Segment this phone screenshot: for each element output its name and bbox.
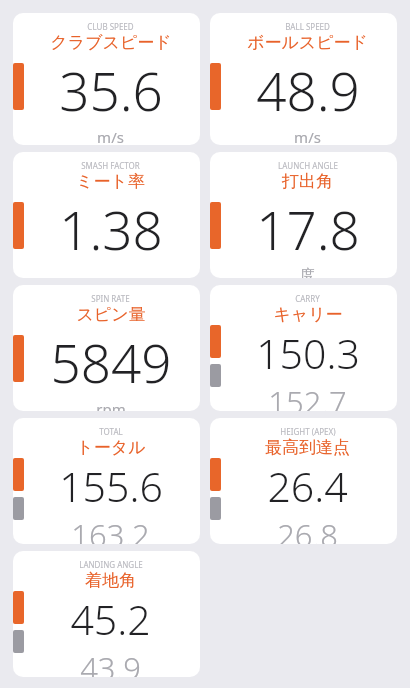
button[interactable]: HEIGHT (APEX)	[210, 418, 397, 544]
button[interactable]: Secondary unit selector	[210, 364, 221, 387]
staticText: CLUB SPEED	[87, 21, 134, 32]
button[interactable]: Primary unit selector	[13, 591, 24, 624]
staticText: 5849	[50, 326, 172, 398]
button[interactable]: SPIN RATE	[13, 285, 200, 411]
button[interactable]: Primary unit selector	[210, 458, 221, 491]
staticText: 打出角	[282, 171, 333, 192]
staticText: 155.6	[59, 458, 163, 514]
staticText: 43.9	[80, 647, 141, 677]
button[interactable]: TOTAL	[13, 418, 200, 544]
button[interactable]: SMASH FACTOR	[13, 152, 200, 278]
staticText: BALL SPEED	[285, 21, 330, 32]
staticText: キャリー	[273, 304, 343, 325]
staticText: TOTAL	[99, 426, 123, 437]
staticText: 最高到達点	[265, 437, 350, 458]
button[interactable]: Secondary unit selector	[13, 630, 24, 653]
staticText: トータル	[76, 437, 146, 458]
button[interactable]: Primary unit selector	[210, 202, 221, 249]
staticText: クラブスピード	[50, 32, 172, 53]
button[interactable]: BALL SPEED	[210, 13, 397, 145]
staticText: 17.8	[256, 193, 360, 265]
staticText: LANDING ANGLE	[79, 559, 143, 570]
staticText: 35.6	[59, 54, 163, 126]
button[interactable]: CARRY	[210, 285, 397, 411]
button[interactable]: Primary unit selector	[13, 202, 24, 249]
staticText: m/s	[294, 127, 321, 145]
staticText: 152.7	[268, 381, 347, 411]
staticText: SPIN RATE	[91, 293, 130, 304]
button[interactable]: Primary unit selector	[13, 335, 24, 382]
button[interactable]: Primary unit selector	[210, 325, 221, 358]
staticText: HEIGHT (APEX)	[280, 426, 336, 437]
staticText: 163.2	[71, 514, 150, 544]
button[interactable]: LAUNCH ANGLE	[210, 152, 397, 278]
staticText: SMASH FACTOR	[81, 160, 140, 171]
staticText: LAUNCH ANGLE	[278, 160, 338, 171]
button[interactable]: Secondary unit selector	[13, 497, 24, 520]
button[interactable]: LANDING ANGLE	[13, 551, 200, 677]
staticText: 45.2	[70, 591, 151, 647]
button[interactable]: CLUB SPEED	[13, 13, 200, 145]
staticText: rpm	[96, 399, 126, 411]
staticText: スピン量	[76, 304, 146, 325]
staticText: 48.9	[256, 54, 360, 126]
staticText: 1.38	[59, 193, 163, 265]
button[interactable]: Secondary unit selector	[210, 497, 221, 520]
staticText: CARRY	[295, 293, 320, 304]
staticText: 26.4	[267, 458, 348, 514]
staticText: m/s	[97, 127, 124, 145]
staticText: ミート率	[76, 171, 145, 192]
staticText: 度	[300, 266, 315, 278]
staticText: 26.8	[277, 514, 338, 544]
staticText: 150.3	[256, 325, 360, 381]
staticText: ボールスピード	[247, 32, 368, 53]
button[interactable]: Primary unit selector	[13, 458, 24, 491]
button[interactable]: Primary unit selector	[210, 63, 221, 110]
button[interactable]: Primary unit selector	[13, 63, 24, 110]
staticText: 着地角	[85, 570, 136, 591]
